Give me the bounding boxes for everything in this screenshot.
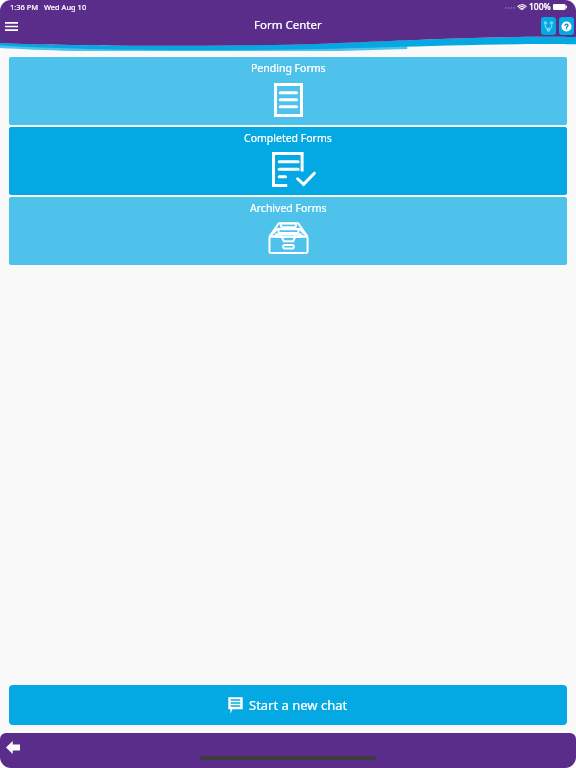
button[interactable]: Archived Forms [9, 197, 567, 265]
staticText: Pending Forms [251, 61, 326, 75]
button[interactable]: Pending Forms [9, 57, 567, 125]
staticText: 100% [529, 1, 551, 13]
button[interactable]: Back [2, 736, 24, 758]
staticText: Completed Forms [244, 131, 332, 145]
staticText: Form Center [254, 17, 322, 33]
staticText: Start a new chat [249, 696, 348, 714]
button[interactable]: Share [541, 17, 556, 35]
staticText: Archived Forms [250, 201, 327, 215]
button[interactable]: Completed Forms [9, 127, 567, 195]
staticText: Wed Aug 10 [44, 2, 87, 12]
button[interactable]: Start a new chat [9, 685, 567, 725]
button[interactable]: Help [559, 17, 574, 35]
staticText: 1:36 PM [10, 2, 39, 12]
button[interactable]: Menu [0, 15, 22, 37]
